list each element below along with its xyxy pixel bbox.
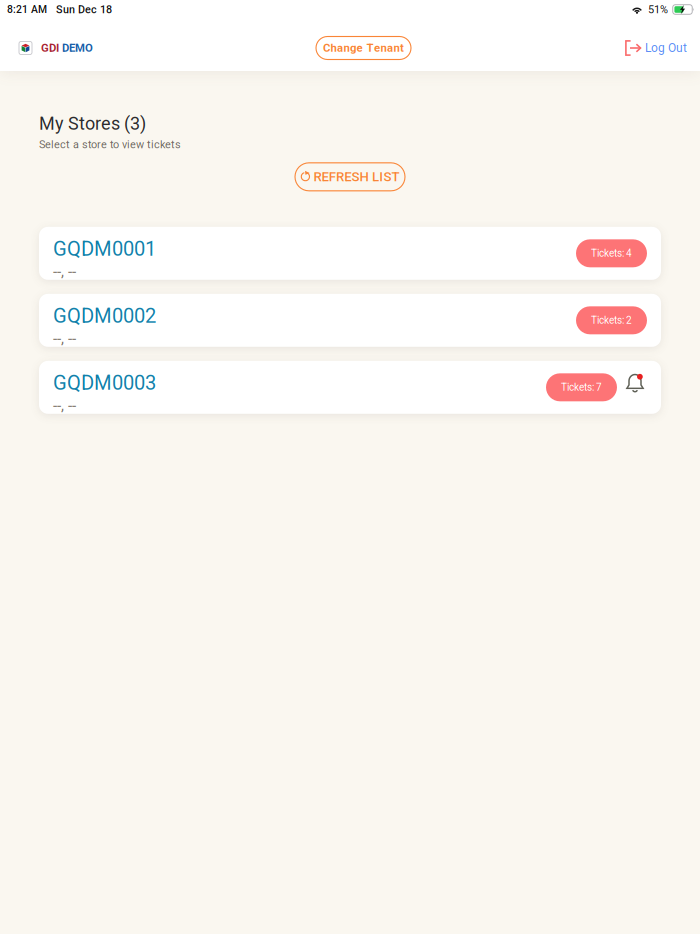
staticText: GDI xyxy=(41,41,62,55)
staticText: 8:21 AM xyxy=(7,3,47,16)
staticText: Select a store to view tickets xyxy=(39,138,181,151)
staticText: Tickets: 2 xyxy=(591,314,632,326)
staticText: My Stores (3) xyxy=(39,113,146,134)
staticText: --, -- xyxy=(53,397,76,415)
button[interactable]: GQDM0001 xyxy=(39,227,661,280)
button[interactable]: GQDM0002 xyxy=(39,294,661,347)
button[interactable]: Notifications xyxy=(617,377,647,397)
button[interactable]: Change Tenant xyxy=(316,36,411,59)
staticText: Tickets: 7 xyxy=(561,381,602,393)
staticText: DEMO xyxy=(62,41,93,55)
button[interactable]: REFRESH LIST xyxy=(295,163,405,191)
staticText: GQDM0002 xyxy=(53,304,156,328)
staticText: Tickets: 4 xyxy=(591,247,632,259)
staticText: 51% xyxy=(648,3,668,16)
staticText: Log Out xyxy=(645,41,687,55)
staticText: REFRESH LIST xyxy=(313,169,400,185)
staticText: --, -- xyxy=(53,330,76,348)
staticText: GQDM0001 xyxy=(53,237,156,261)
staticText: Sun Dec 18 xyxy=(56,3,112,16)
staticText: GQDM0003 xyxy=(53,371,156,395)
button[interactable]: Log Out xyxy=(625,40,687,56)
staticText: Change Tenant xyxy=(323,41,404,55)
staticText: --, -- xyxy=(53,263,76,281)
button[interactable]: GDI xyxy=(19,41,93,55)
button[interactable]: GQDM0003 xyxy=(39,361,661,414)
